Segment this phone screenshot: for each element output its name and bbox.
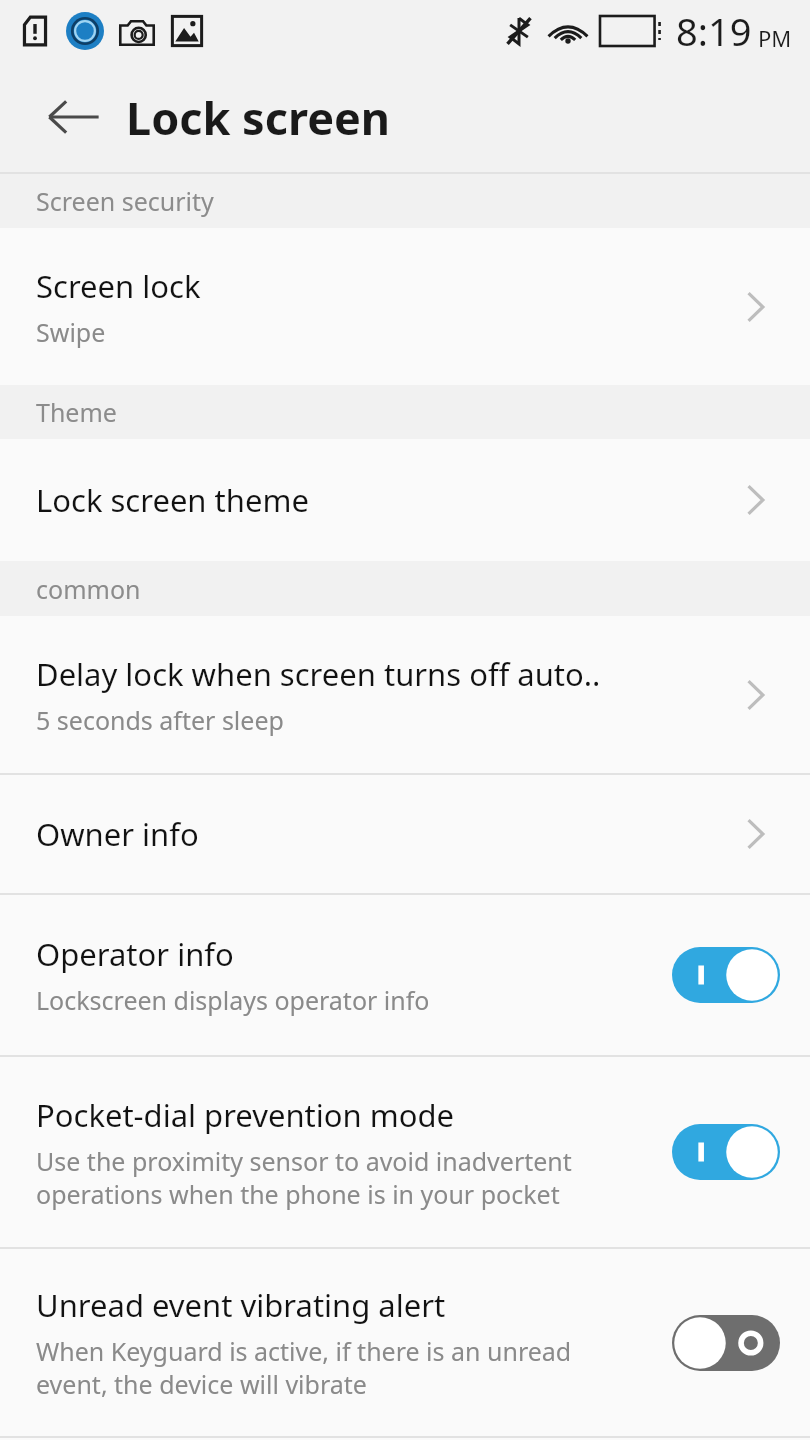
staticText: Swipe <box>36 315 106 349</box>
staticText: PM <box>758 23 792 53</box>
staticText: Screen lock <box>36 265 201 307</box>
button[interactable]: On <box>672 947 780 1003</box>
staticText: Lockscreen displays operator info <box>36 983 430 1017</box>
button[interactable]: Off <box>672 1315 780 1371</box>
staticText: 5 seconds after sleep <box>36 703 284 737</box>
staticText: Theme <box>36 395 117 429</box>
staticText: Owner info <box>36 813 199 855</box>
staticText: 8:19 <box>676 5 752 57</box>
button[interactable]: Unread event vibrating alert <box>0 1249 810 1436</box>
button[interactable]: Owner info <box>0 775 810 893</box>
button[interactable]: Pocket-dial prevention mode <box>0 1057 810 1247</box>
staticText: Unread event vibrating alert <box>36 1284 446 1326</box>
staticText: Operator info <box>36 933 234 975</box>
button[interactable]: Back <box>44 87 104 147</box>
button[interactable]: Operator info <box>0 895 810 1055</box>
staticText: Delay lock when screen turns off auto.. <box>36 653 601 695</box>
staticText: Use the proximity sensor to avoid inadve… <box>36 1144 572 1211</box>
staticText: When Keyguard is active, if there is an … <box>36 1334 572 1401</box>
button[interactable]: On <box>672 1124 780 1180</box>
staticText: Pocket-dial prevention mode <box>36 1094 455 1136</box>
button[interactable]: Delay lock when screen turns off auto.. <box>0 616 810 773</box>
staticText: Lock screen theme <box>36 479 309 521</box>
staticText: common <box>36 572 141 606</box>
staticText: Screen security <box>36 184 214 218</box>
button[interactable]: Screen lock <box>0 228 810 385</box>
button[interactable]: Lock screen theme <box>0 439 810 561</box>
staticText: Lock screen <box>126 87 391 148</box>
